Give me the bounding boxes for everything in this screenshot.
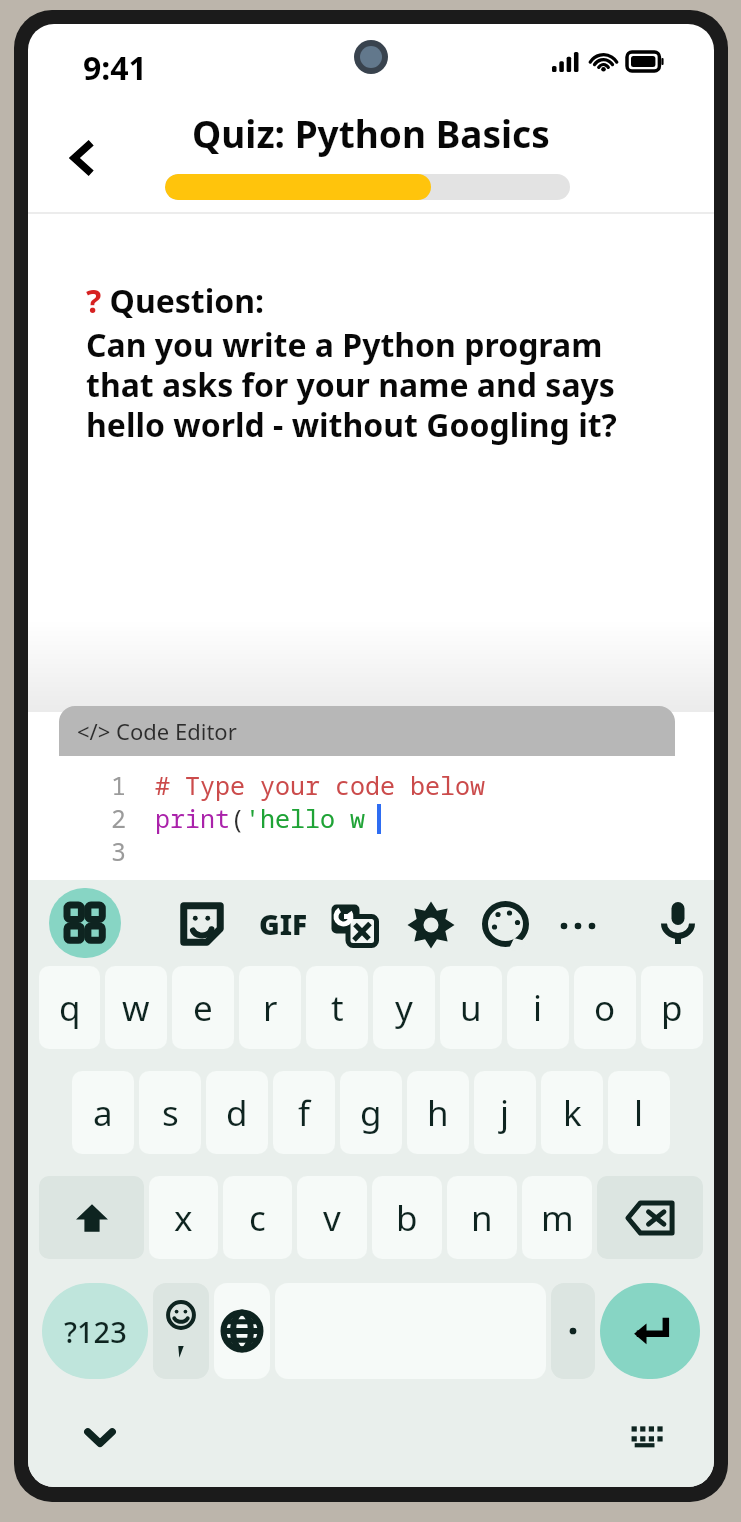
staticText: ?123 [64, 1312, 127, 1351]
staticText: Quiz: Python Basics [192, 108, 550, 158]
button[interactable]: Theme [481, 900, 531, 950]
button[interactable]: e [172, 966, 234, 1049]
staticText: u [460, 984, 482, 1032]
staticText: c [249, 1194, 266, 1242]
button[interactable]: Switch keyboard [622, 1411, 674, 1463]
button[interactable]: Backspace [597, 1176, 703, 1259]
button[interactable]: Keyboard apps [49, 888, 121, 958]
button[interactable]: j [474, 1071, 536, 1154]
staticText: f [298, 1089, 311, 1137]
button[interactable]: </> Code Editor [59, 706, 675, 756]
button[interactable]: f [273, 1071, 335, 1154]
button[interactable]: GIF [252, 904, 314, 944]
button[interactable]: ?123 [42, 1283, 148, 1379]
staticText: k [563, 1089, 582, 1137]
button[interactable]: Voice input [653, 898, 703, 948]
staticText: ? Question: [86, 279, 265, 323]
button[interactable]: k [541, 1071, 603, 1154]
button[interactable]: b [372, 1176, 442, 1259]
staticText: GIF [259, 905, 308, 943]
staticText: 2 [111, 801, 155, 834]
button[interactable]: p [641, 966, 703, 1049]
button[interactable]: Emoji and comma [153, 1283, 209, 1379]
button[interactable]: g [340, 1071, 402, 1154]
staticText: n [471, 1194, 493, 1242]
staticText: d [226, 1089, 248, 1137]
staticText: q [59, 984, 81, 1032]
button[interactable]: y [373, 966, 435, 1049]
button[interactable]: More options [553, 900, 603, 950]
staticText: v [323, 1194, 341, 1242]
staticText: b [396, 1194, 418, 1242]
button[interactable]: r [239, 966, 301, 1049]
button[interactable]: Back [52, 128, 112, 188]
button[interactable]: Enter [600, 1283, 700, 1379]
button[interactable]: u [440, 966, 502, 1049]
button[interactable]: Settings [406, 900, 456, 950]
button[interactable]: v [297, 1176, 367, 1259]
button[interactable]: Hide keyboard [74, 1411, 126, 1463]
staticText: h [427, 1089, 449, 1137]
staticText: t [331, 984, 344, 1032]
button[interactable]: i [507, 966, 569, 1049]
staticText: 1 [111, 768, 155, 801]
staticText: 3 [111, 834, 155, 867]
button[interactable]: m [522, 1176, 592, 1259]
button[interactable]: d [206, 1071, 268, 1154]
staticText: p [661, 984, 683, 1032]
button[interactable]: t [306, 966, 368, 1049]
staticText: e [193, 984, 213, 1032]
button[interactable]: Shift [39, 1176, 144, 1259]
staticText: m [541, 1194, 574, 1242]
staticText: r [263, 984, 278, 1032]
staticText: i [533, 984, 543, 1032]
button[interactable]: h [407, 1071, 469, 1154]
button[interactable] [551, 1283, 595, 1379]
staticText: s [162, 1089, 179, 1137]
staticText: 9:41 [83, 46, 147, 90]
button[interactable]: x [149, 1176, 218, 1259]
staticText: w [122, 984, 150, 1032]
staticText: a [93, 1089, 113, 1137]
staticText: # Type your code below [155, 768, 486, 801]
button[interactable]: w [105, 966, 167, 1049]
button[interactable]: n [447, 1176, 517, 1259]
button[interactable]: o [574, 966, 636, 1049]
button[interactable]: a [72, 1071, 134, 1154]
button[interactable]: Translate [329, 900, 379, 950]
button[interactable]: s [139, 1071, 201, 1154]
button[interactable]: q [39, 966, 100, 1049]
staticText: o [594, 984, 616, 1032]
staticText: Can you write a Python program that asks… [86, 323, 666, 447]
staticText: g [360, 1089, 382, 1137]
button[interactable]: Change language [214, 1283, 270, 1379]
staticText: </> Code Editor [77, 716, 237, 746]
staticText: print('hello w [155, 801, 366, 834]
staticText: y [395, 984, 413, 1032]
button[interactable]: Stickers [178, 900, 226, 948]
staticText: l [634, 1089, 644, 1137]
staticText: x [174, 1194, 193, 1242]
button[interactable]: c [223, 1176, 292, 1259]
staticText: j [500, 1089, 510, 1137]
button[interactable]: l [608, 1071, 670, 1154]
